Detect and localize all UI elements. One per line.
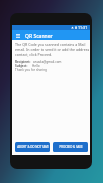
staticText: QR Scanner bbox=[25, 33, 53, 40]
staticText: Hello bbox=[32, 64, 40, 68]
staticText: Subject: bbox=[15, 64, 28, 68]
staticText: ABORT & DO NOT SAVE bbox=[17, 145, 49, 149]
staticText: Thank you for sharing bbox=[15, 68, 47, 72]
staticText: The QR Code you scanned contains a Mail bbox=[15, 42, 86, 47]
staticText: Recipient: bbox=[15, 60, 31, 64]
staticText: PROCEED & SAVE bbox=[59, 145, 83, 149]
button[interactable]: PROCEED & SAVE bbox=[53, 142, 88, 152]
staticText: anuska@gmail.com bbox=[33, 60, 62, 64]
staticText: 11:31 bbox=[78, 25, 88, 30]
button[interactable]: ABORT & DO NOT SAVE bbox=[15, 142, 50, 152]
staticText: email. In order to send it or add the ad… bbox=[15, 47, 89, 52]
button[interactable]: Menu bbox=[15, 32, 21, 38]
staticText: contact, click Proceed. bbox=[15, 52, 53, 57]
